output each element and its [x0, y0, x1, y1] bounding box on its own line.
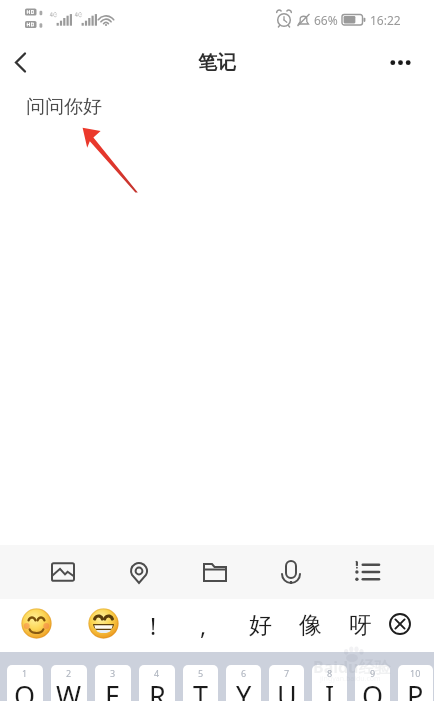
button[interactable]: 呀	[338, 600, 382, 651]
button[interactable]: Back	[0, 40, 42, 87]
staticText: jingyan.baidu.com	[320, 674, 381, 684]
button[interactable]: Delete	[384, 608, 416, 640]
button[interactable]: 好	[238, 600, 282, 651]
button[interactable]: Checklist	[340, 545, 394, 599]
staticText: W	[56, 677, 82, 701]
staticText: 6	[241, 667, 247, 679]
button[interactable]: 7	[269, 665, 304, 701]
button[interactable]: 4	[139, 665, 175, 701]
staticText: 9	[370, 667, 376, 679]
staticText: 4	[154, 667, 160, 679]
button[interactable]: 5	[183, 665, 218, 701]
button[interactable]: 3	[95, 665, 131, 701]
staticText: 5	[198, 667, 204, 679]
staticText: 7	[284, 667, 290, 679]
staticText: 3	[110, 667, 116, 679]
button[interactable]: 9	[355, 665, 390, 701]
staticText: 16:22	[370, 12, 401, 28]
button[interactable]: !	[131, 600, 175, 651]
button[interactable]: Image	[36, 545, 90, 599]
staticText: 好	[249, 611, 272, 640]
staticText: 8	[327, 667, 333, 679]
button[interactable]: 像	[288, 600, 332, 651]
button[interactable]: More options	[386, 40, 434, 87]
staticText: E	[105, 677, 121, 701]
button[interactable]: Grinning face emoji	[88, 608, 119, 639]
staticText: T	[193, 677, 209, 701]
staticText: 问问你好	[26, 95, 102, 119]
staticText: ,	[200, 610, 207, 641]
staticText: 呀	[349, 611, 372, 640]
staticText: U	[277, 677, 297, 701]
button[interactable]: 1	[7, 665, 43, 701]
staticText: P	[407, 677, 424, 701]
button[interactable]: 10	[398, 665, 433, 701]
button[interactable]: ,	[181, 600, 225, 651]
button[interactable]: Voice	[264, 545, 318, 599]
staticText: 10	[410, 667, 421, 679]
staticText: 像	[299, 611, 322, 640]
button[interactable]: Folder	[188, 545, 242, 599]
button[interactable]: 6	[226, 665, 261, 701]
staticText: I	[325, 677, 335, 701]
staticText: Baidu经验	[313, 656, 391, 678]
staticText: 笔记	[198, 51, 236, 75]
staticText: 66%	[314, 12, 338, 28]
staticText: 2	[66, 667, 72, 679]
button[interactable]: 2	[51, 665, 87, 701]
staticText: Q	[14, 677, 36, 701]
button[interactable]: Location	[112, 545, 166, 599]
staticText: 1	[22, 667, 28, 679]
staticText: R	[149, 677, 166, 701]
staticText: !	[150, 610, 157, 641]
button[interactable]: 8	[312, 665, 347, 701]
staticText: O	[362, 677, 384, 701]
staticText: Y	[236, 677, 252, 701]
button[interactable]: Smiling face emoji	[21, 608, 52, 639]
